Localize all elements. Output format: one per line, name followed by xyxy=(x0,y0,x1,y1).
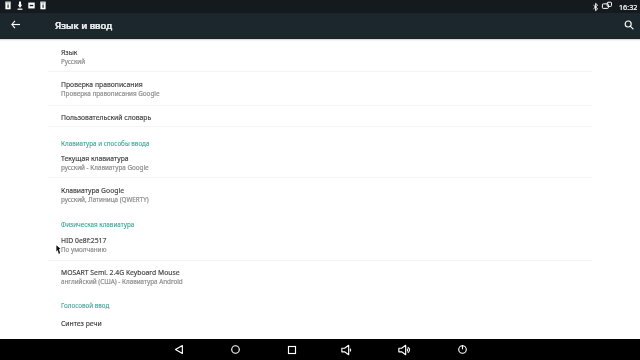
button[interactable]: Клавиатура Google xyxy=(0,180,640,210)
staticText: Голосовой ввод xyxy=(61,301,110,310)
staticText: Клавиатура Google xyxy=(61,186,125,195)
staticText: Клавиатура Google xyxy=(61,186,125,195)
staticText: русский - Клавиатура Google xyxy=(61,163,149,172)
button[interactable]: Back xyxy=(7,16,23,32)
staticText: Клавиатура и способы ввода xyxy=(61,139,150,148)
staticText: Язык и ввод xyxy=(55,19,113,32)
button[interactable]: Текущая клавиатура xyxy=(0,148,640,178)
staticText: Физическая клавиатура xyxy=(61,220,135,229)
button[interactable]: HID 0e8f:2517 xyxy=(0,230,640,260)
staticText: Язык xyxy=(61,48,78,57)
staticText: Синтез речи xyxy=(61,319,102,328)
staticText: Пользовательский словарь xyxy=(61,113,152,122)
button[interactable]: Search xyxy=(621,17,637,33)
staticText: английский (США) - Клавиатура Android xyxy=(61,277,183,286)
staticText: русский, Латиница (QWERTY) xyxy=(61,195,149,204)
staticText: Проверка правописания xyxy=(61,80,143,89)
staticText: MOSART Semi. 2.4G Keyboard Mouse xyxy=(61,268,180,277)
staticText: Голосовой ввод xyxy=(61,301,110,310)
staticText: HID 0e8f:2517 xyxy=(61,236,107,245)
staticText: Проверка правописания Google xyxy=(61,89,160,98)
button[interactable]: Пользовательский словарь xyxy=(0,107,640,131)
staticText: Синтез речи xyxy=(61,319,102,328)
staticText: Текущая клавиатура xyxy=(61,154,129,163)
staticText: Текущая клавиатура xyxy=(61,154,129,163)
staticText: HID 0e8f:2517 xyxy=(61,236,107,245)
button[interactable]: MOSART Semi. 2.4G Keyboard Mouse xyxy=(0,262,640,292)
button[interactable]: Back xyxy=(165,339,193,360)
staticText: Физическая клавиатура xyxy=(61,220,135,229)
staticText: 16:32 xyxy=(619,2,638,12)
staticText: русский - Клавиатура Google xyxy=(61,163,149,172)
staticText: MOSART Semi. 2.4G Keyboard Mouse xyxy=(61,268,180,277)
button[interactable]: Язык xyxy=(0,42,640,72)
button[interactable]: Power xyxy=(448,339,476,360)
staticText: Язык и ввод xyxy=(55,19,113,32)
button[interactable]: Volume up xyxy=(390,339,418,360)
staticText: Проверка правописания xyxy=(61,80,143,89)
button[interactable]: Recent apps xyxy=(278,339,306,360)
staticText: Клавиатура и способы ввода xyxy=(61,139,150,148)
staticText: По умолчанию xyxy=(61,245,107,254)
staticText: английский (США) - Клавиатура Android xyxy=(61,277,183,286)
staticText: русский, Латиница (QWERTY) xyxy=(61,195,149,204)
button[interactable]: Проверка правописания xyxy=(0,74,640,104)
button[interactable]: Home xyxy=(221,339,249,360)
staticText: По умолчанию xyxy=(61,245,107,254)
button[interactable]: Volume down xyxy=(333,339,361,360)
button[interactable]: Синтез речи xyxy=(0,313,640,337)
staticText: Русский xyxy=(61,57,86,66)
staticText: Русский xyxy=(61,57,86,66)
staticText: Язык xyxy=(61,48,78,57)
staticText: Пользовательский словарь xyxy=(61,113,152,122)
staticText: Проверка правописания Google xyxy=(61,89,160,98)
